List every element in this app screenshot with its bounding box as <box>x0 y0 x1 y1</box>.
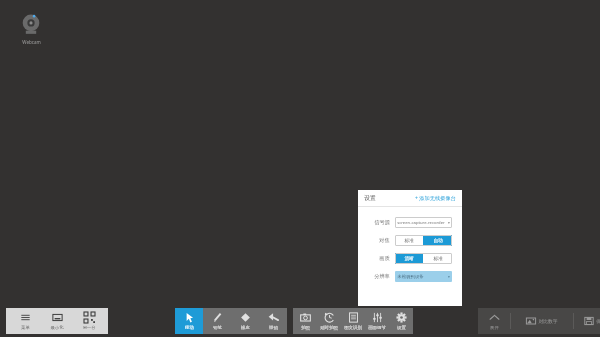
staticText: 标准 <box>404 238 414 244</box>
staticText: 图文识别 <box>344 325 362 331</box>
staticText: 设置 <box>364 194 376 202</box>
button[interactable]: 设置 <box>389 308 413 334</box>
staticText: 另一台 <box>82 325 96 331</box>
button[interactable]: 橡皮 <box>231 308 259 334</box>
staticText: 铅笔 <box>213 325 222 331</box>
button[interactable]: 未检测到设备 <box>395 271 452 282</box>
button[interactable]: 移动 <box>175 308 203 334</box>
button[interactable]: 撤销 <box>259 308 287 334</box>
staticText: 菜单 <box>21 325 30 331</box>
button[interactable]: 清晰 <box>395 253 423 264</box>
button[interactable]: 铅笔 <box>203 308 231 334</box>
button[interactable]: 展开 <box>478 308 510 334</box>
staticText: screen-capture-recorder <box>397 220 445 226</box>
staticText: 橡皮 <box>241 325 250 331</box>
staticText: 设置 <box>397 325 406 331</box>
staticText: + <box>414 194 419 202</box>
staticText: 添加无线摄像台 <box>419 195 456 202</box>
staticText: 画质 <box>379 255 390 262</box>
staticText: 未检测到设备 <box>397 274 424 280</box>
staticText: 画面调节 <box>368 325 386 331</box>
button[interactable]: 自动 <box>423 235 452 246</box>
staticText: 保存 <box>596 318 600 324</box>
staticText: 移动 <box>185 325 194 331</box>
staticText: 信号源 <box>374 219 390 226</box>
staticText: 对比数字 <box>538 318 558 324</box>
button[interactable]: 标准 <box>395 235 423 246</box>
staticText: 清晰 <box>404 256 414 262</box>
staticText: ▾ <box>448 275 450 279</box>
staticText: 最小化 <box>50 325 64 331</box>
button[interactable]: 画面调节 <box>365 308 389 334</box>
button[interactable]: 另一台 <box>73 308 105 334</box>
button[interactable]: + <box>414 194 456 202</box>
button[interactable]: 标准 <box>423 253 452 264</box>
staticText: 标准 <box>433 256 443 262</box>
button[interactable]: 图文识别 <box>341 308 365 334</box>
staticText: 延时拍照 <box>320 325 338 331</box>
staticText: 撤销 <box>269 325 278 331</box>
staticText: 拍照 <box>301 325 310 331</box>
button[interactable]: 最小化 <box>41 308 73 334</box>
staticText: 自动 <box>433 238 443 244</box>
button[interactable]: 延时拍照 <box>317 308 341 334</box>
button[interactable]: Webcam shortcut <box>14 12 48 45</box>
staticText: 对焦 <box>379 237 390 244</box>
staticText: 展开 <box>490 325 499 331</box>
staticText: ▾ <box>448 221 450 225</box>
button[interactable]: 保存 <box>574 308 600 334</box>
staticText: 分辨率 <box>374 273 390 280</box>
staticText: Webcam <box>22 39 41 45</box>
button[interactable]: 对比数字 <box>511 308 573 334</box>
button[interactable]: 菜单 <box>9 308 41 334</box>
button[interactable]: screen-capture-recorder <box>395 217 452 228</box>
button[interactable]: 拍照 <box>293 308 317 334</box>
